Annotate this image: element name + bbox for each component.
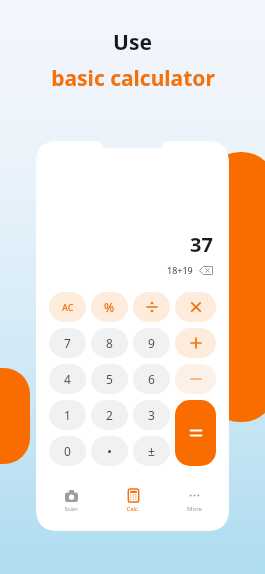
button[interactable]: Scan [45,487,97,515]
staticText: Calc. [126,505,140,513]
button[interactable]: More [168,487,220,515]
staticText: 3 [148,407,155,423]
button[interactable]: 1 [49,400,86,430]
button[interactable] [133,292,170,322]
staticText: 0 [64,443,71,459]
staticText: 5 [106,371,113,387]
staticText: ± [148,443,155,459]
staticText: 18+19 [167,264,193,276]
button[interactable] [175,292,216,322]
button[interactable]: % [91,292,128,322]
button[interactable]: 7 [49,328,86,358]
button[interactable]: 9 [133,328,170,358]
button[interactable] [175,400,216,466]
staticText: Scan [64,505,78,513]
staticText: % [104,299,115,315]
staticText: More [187,505,202,513]
staticText: 1 [64,407,71,423]
button[interactable]: 5 [91,364,128,394]
staticText: 9 [148,335,155,351]
button[interactable]: AC [49,292,86,322]
button[interactable]: 4 [49,364,86,394]
staticText: 6 [148,371,155,387]
button[interactable]: Backspace [199,266,213,275]
staticText: 2 [106,407,113,423]
button[interactable] [175,328,216,358]
button[interactable]: 0 [49,436,86,466]
button[interactable]: 8 [91,328,128,358]
staticText: 37 [190,231,213,258]
staticText: Use [113,28,152,57]
staticText: 8 [106,335,113,351]
button[interactable]: 6 [133,364,170,394]
staticText: basic calculator [51,64,215,93]
button[interactable] [175,364,216,394]
staticText: 4 [64,371,71,387]
staticText: AC [62,301,74,313]
button[interactable]: Calc. [107,487,159,515]
button[interactable]: ± [133,436,170,466]
button[interactable] [91,436,128,466]
button[interactable]: 3 [133,400,170,430]
button[interactable]: 2 [91,400,128,430]
staticText: 7 [64,335,71,351]
